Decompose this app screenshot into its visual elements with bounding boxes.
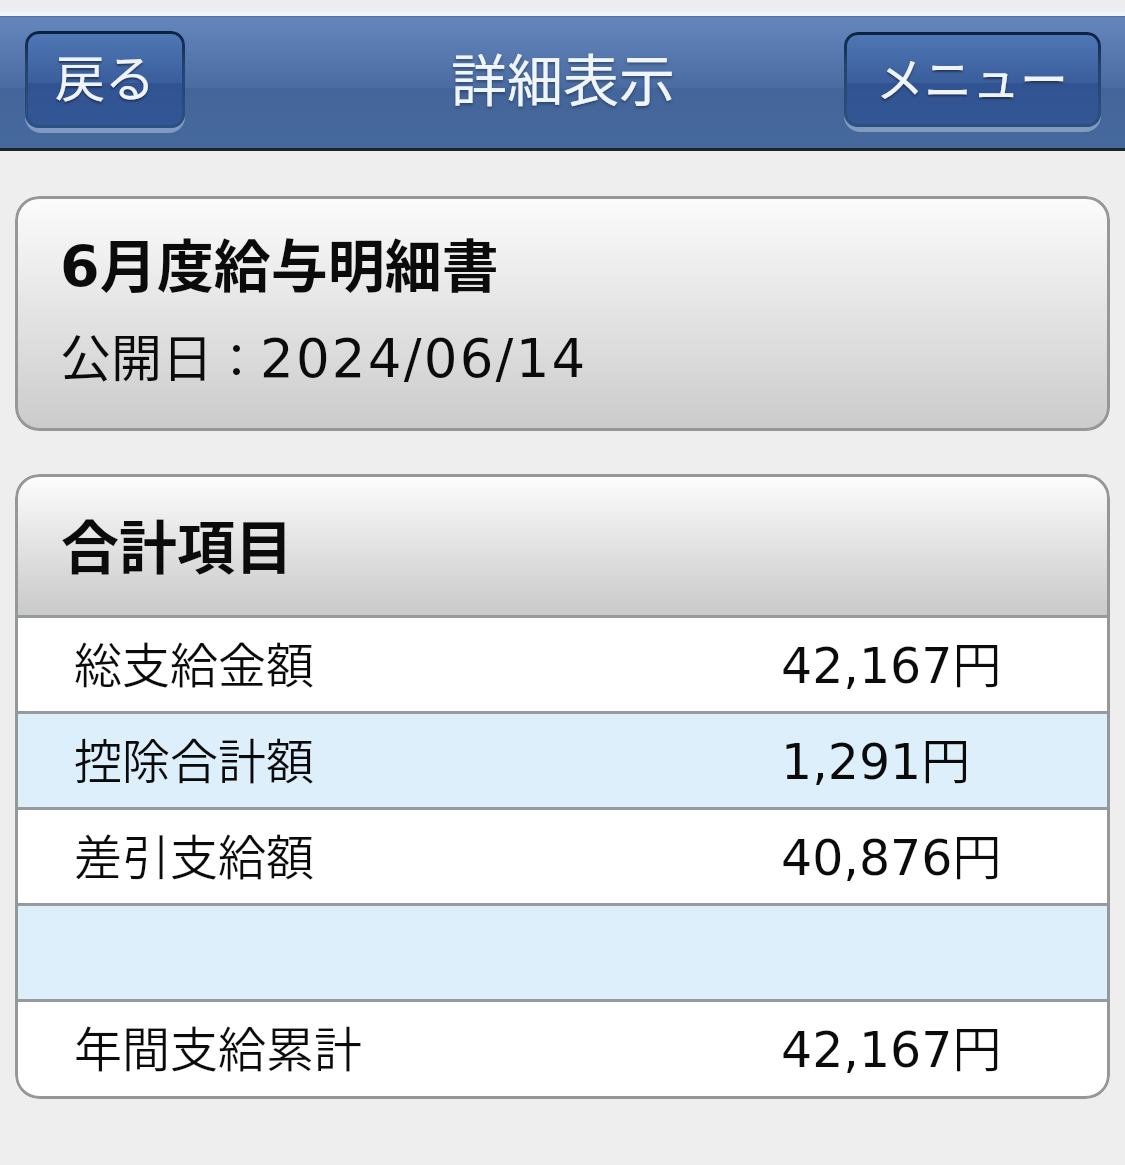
- staticText: 合計項目: [61, 502, 294, 586]
- staticText: 42,167円: [781, 626, 1002, 697]
- button[interactable]: 年間支給累計: [18, 1002, 1107, 1095]
- staticText: メニュー: [876, 41, 1069, 111]
- staticText: 42,167円: [781, 1010, 1002, 1081]
- staticText: 6月度給与明細書: [60, 221, 499, 304]
- staticText: 総支給金額: [74, 627, 315, 697]
- staticText: 差引支給額: [74, 819, 315, 889]
- button[interactable]: 差引支給額: [18, 810, 1107, 903]
- button[interactable]: Menu: [844, 32, 1101, 127]
- staticText: 年間支給累計: [74, 1011, 363, 1081]
- button[interactable]: Back: [25, 31, 185, 128]
- button[interactable]: 6月度給与明細書: [15, 196, 1110, 431]
- staticText: 40,876円: [781, 818, 1002, 889]
- staticText: 戻る: [55, 39, 155, 111]
- staticText: 公開日：2024/06/14: [60, 318, 588, 392]
- button[interactable]: 控除合計額: [18, 714, 1107, 807]
- button[interactable]: 総支給金額: [18, 618, 1107, 711]
- staticText: 1,291円: [781, 722, 971, 793]
- staticText: 控除合計額: [74, 723, 315, 793]
- staticText: 詳細表示: [451, 36, 675, 117]
